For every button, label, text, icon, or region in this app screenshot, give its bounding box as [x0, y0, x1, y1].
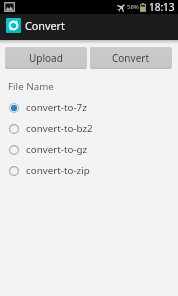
staticText: convert-to-bz2 [26, 122, 93, 135]
staticText: convert-to-zip [26, 164, 90, 177]
staticText: Upload [29, 51, 63, 65]
staticText: 58% [127, 3, 139, 11]
button[interactable]: convert-to-7z [0, 97, 178, 118]
button[interactable]: Convert [90, 47, 172, 69]
staticText: File Name [8, 80, 54, 93]
staticText: Convert [112, 51, 150, 65]
button[interactable]: Upload [5, 47, 87, 69]
staticText: 18:13 [149, 0, 175, 14]
button[interactable]: convert-to-gz [0, 139, 178, 160]
staticText: convert-to-7z [26, 101, 87, 114]
button[interactable]: convert-to-bz2 [0, 118, 178, 139]
staticText: convert-to-gz [26, 143, 88, 156]
staticText: Convert [25, 18, 65, 33]
other: App icon [6, 18, 21, 33]
button[interactable]: convert-to-zip [0, 160, 178, 181]
